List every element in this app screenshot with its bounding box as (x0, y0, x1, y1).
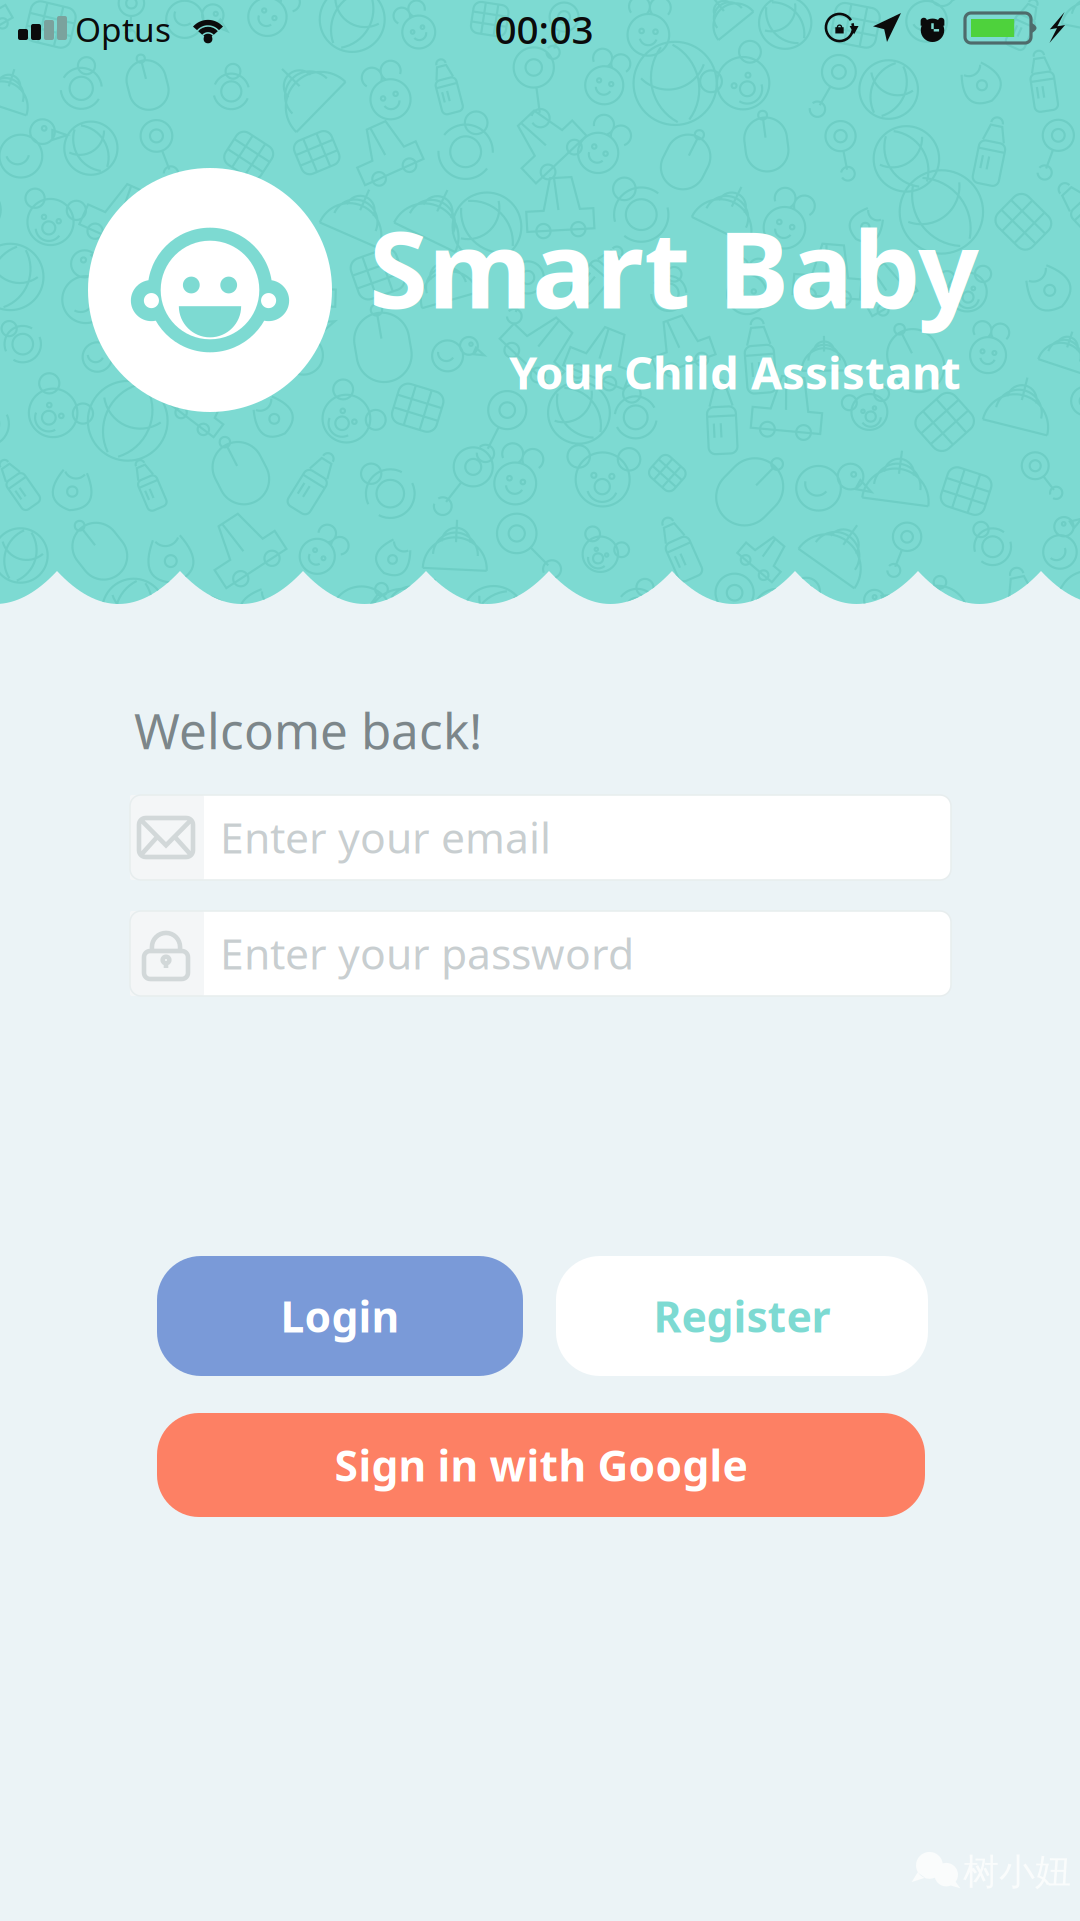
staticText: Smart Baby (369, 196, 979, 338)
staticText: Register (653, 1288, 830, 1344)
button[interactable]: Sign in with Google (157, 1413, 925, 1517)
staticText: Enter your email (220, 809, 551, 865)
button[interactable]: Login (157, 1256, 523, 1376)
staticText: Login (280, 1288, 399, 1344)
staticText: Your Child Assistant (509, 342, 961, 402)
staticText: Sign in with Google (334, 1437, 747, 1493)
staticText: 00:03 (494, 3, 593, 55)
staticText: Welcome back! (134, 697, 482, 763)
staticText: Optus (75, 7, 171, 51)
staticText: Enter your password (220, 925, 634, 981)
staticText: 树小妞 (963, 1850, 1071, 1894)
button[interactable]: Register (556, 1256, 928, 1376)
